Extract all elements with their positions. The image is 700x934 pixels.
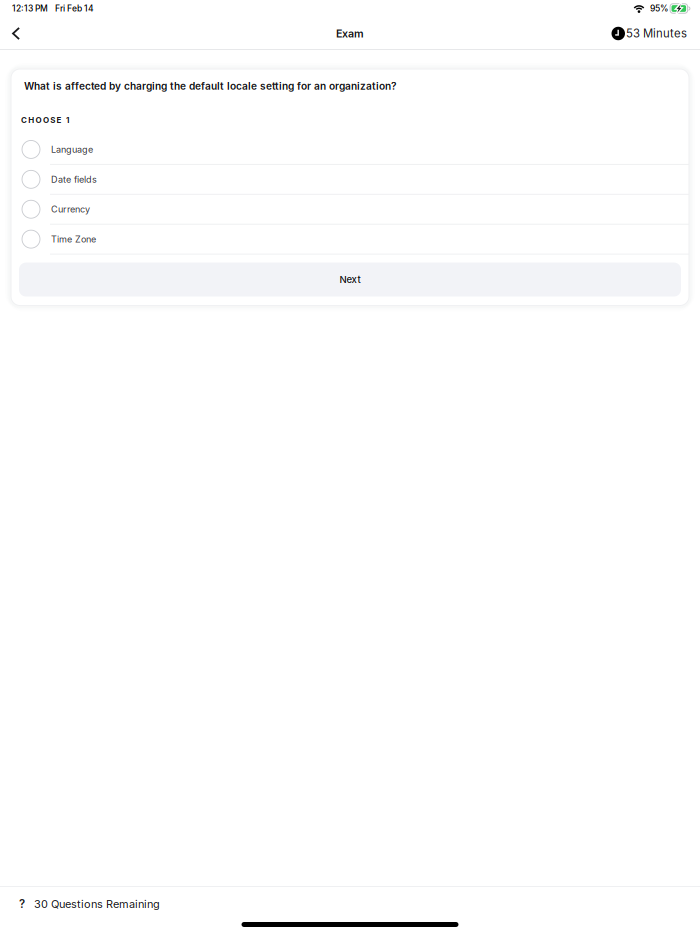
button[interactable]: Time Zone xyxy=(11,225,689,254)
button[interactable]: Currency xyxy=(11,195,689,225)
staticText: Date fields xyxy=(51,174,97,185)
staticText: ? xyxy=(19,897,25,911)
button[interactable]: 53 Minutes xyxy=(611,17,700,50)
button[interactable]: Language xyxy=(11,135,689,165)
button[interactable]: ? xyxy=(0,886,700,922)
staticText: Time Zone xyxy=(51,234,96,245)
button[interactable]: Date fields xyxy=(11,165,689,195)
staticText: 95% xyxy=(650,3,668,14)
staticText: Next xyxy=(339,274,360,285)
staticText: Exam xyxy=(336,27,364,40)
staticText: 53 Minutes xyxy=(626,27,687,40)
staticText: 12:13 PM xyxy=(12,3,48,14)
staticText: Currency xyxy=(51,204,90,215)
staticText: 30 Questions Remaining xyxy=(34,897,160,911)
staticText: Language xyxy=(51,144,93,155)
staticText: Fri Feb 14 xyxy=(55,3,94,14)
staticText: CHOOSE 1 xyxy=(21,115,69,125)
button[interactable]: Next xyxy=(19,262,681,296)
staticText: What is affected by charging the default… xyxy=(24,80,397,92)
button[interactable]: Back xyxy=(0,17,32,50)
